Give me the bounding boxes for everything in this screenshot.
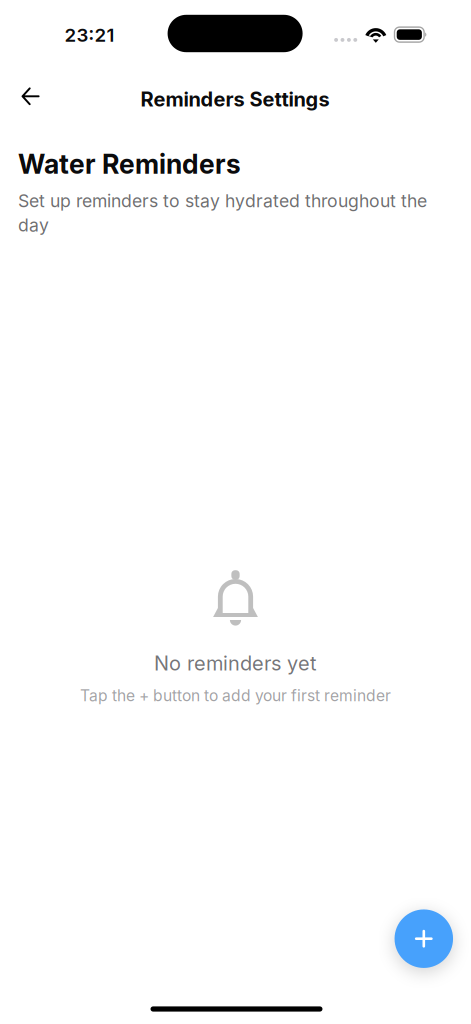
button[interactable]: Back — [8, 74, 52, 118]
staticText: Tap the + button to add your first remin… — [80, 686, 391, 705]
staticText: Water Reminders — [18, 148, 241, 180]
staticText: Set up reminders to stay hydrated throug… — [18, 190, 427, 236]
staticText: Reminders Settings — [140, 87, 329, 111]
button[interactable]: Add reminder — [395, 909, 453, 968]
staticText: 23:21 — [64, 24, 114, 46]
staticText: No reminders yet — [154, 651, 317, 675]
button[interactable]: Reminders Settings — [128, 77, 341, 121]
